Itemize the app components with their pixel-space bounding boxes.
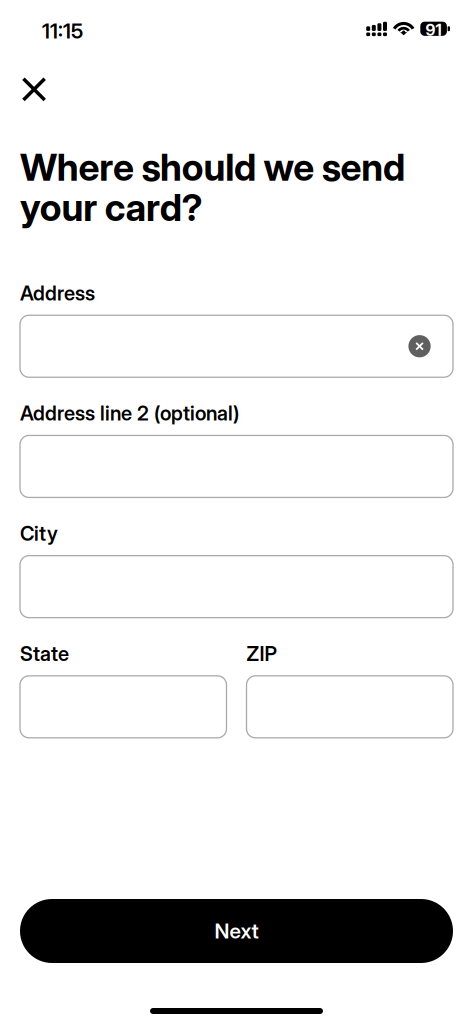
- staticText: 11:15: [42, 18, 83, 43]
- staticText: Address: [20, 281, 95, 305]
- staticText: Where should we send your card?: [20, 145, 405, 230]
- button[interactable]: ZIP: [246, 676, 453, 738]
- staticText: Address line 2 (optional): [20, 401, 239, 425]
- button[interactable]: Address: [20, 315, 453, 377]
- button[interactable]: City: [20, 556, 453, 618]
- button[interactable]: State: [20, 676, 226, 738]
- staticText: City: [20, 521, 58, 546]
- staticText: Next: [214, 918, 258, 943]
- button[interactable]: Close: [0, 52, 70, 114]
- button[interactable]: Address line 2 (optional): [20, 435, 453, 497]
- button[interactable]: Clear text: [408, 335, 431, 357]
- staticText: ZIP: [246, 642, 277, 666]
- staticText: State: [20, 642, 69, 666]
- button[interactable]: Next: [20, 899, 453, 963]
- staticText: 91: [426, 20, 442, 40]
